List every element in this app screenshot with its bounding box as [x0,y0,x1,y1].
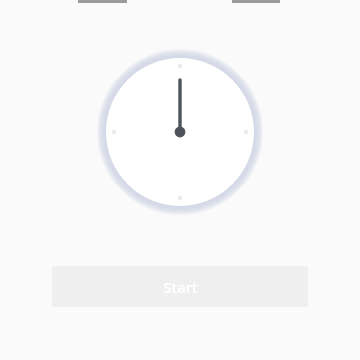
button[interactable]: Timer dial [100,52,260,212]
staticText: Start [163,277,198,297]
